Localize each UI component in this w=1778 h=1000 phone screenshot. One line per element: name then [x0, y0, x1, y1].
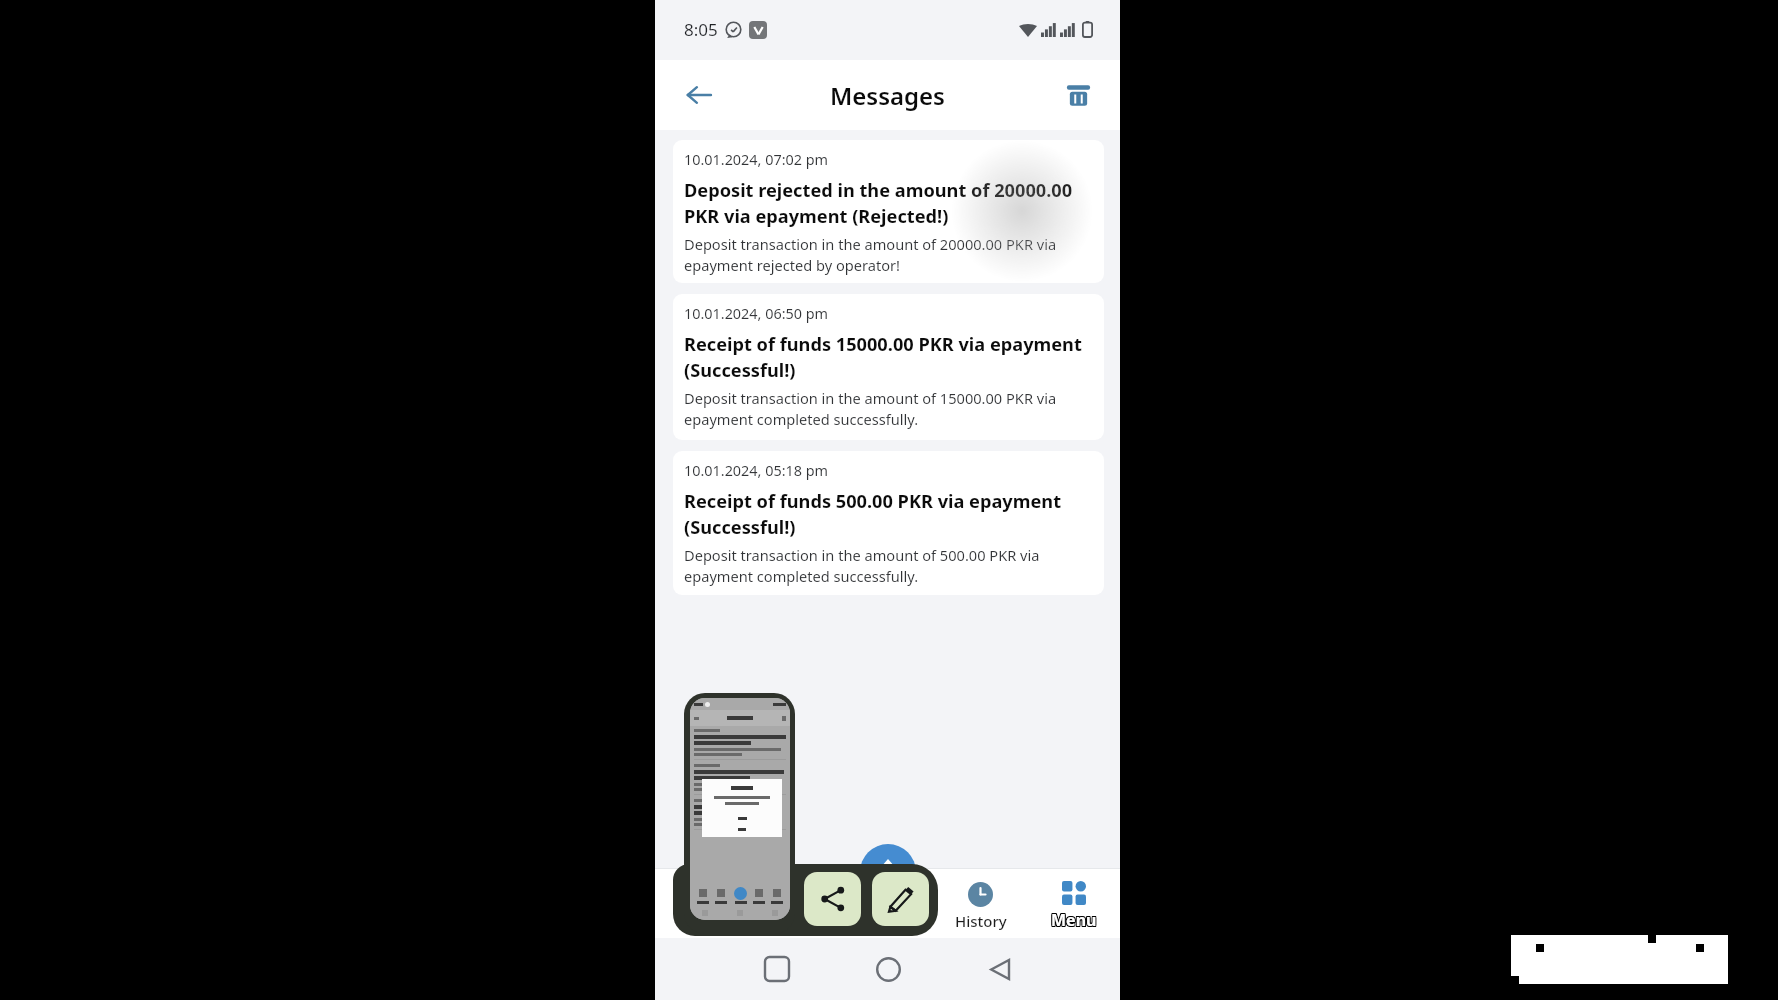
staticText: Menu [1051, 909, 1097, 931]
button[interactable]: Back [983, 952, 1017, 986]
button[interactable]: Menu [1027, 868, 1120, 938]
button[interactable]: Sports [655, 868, 748, 938]
staticText: Menu [1050, 909, 1096, 931]
staticText: Sports [678, 911, 725, 931]
staticText: Deposit transaction in the amount of 500… [684, 545, 1093, 587]
button[interactable]: Bets [841, 868, 934, 938]
button[interactable]: Delete [1056, 73, 1100, 117]
button[interactable]: 10.01.2024, 07:02 pm [673, 140, 1104, 283]
staticText: 10.01.2024, 06:50 pm [684, 304, 828, 324]
staticText: Receipt of funds 15000.00 PKR via epayme… [684, 332, 1093, 382]
button[interactable]: 10.01.2024, 06:50 pm [673, 294, 1104, 440]
staticText: Menu [1052, 908, 1098, 930]
button[interactable]: Share [804, 872, 861, 926]
staticText: Menu [1052, 910, 1098, 932]
staticText: Menu [1050, 908, 1096, 930]
staticText: Deposit rejected in the amount of 20000.… [684, 178, 1093, 228]
staticText: Messages [830, 79, 945, 112]
staticText: Menu [1051, 910, 1097, 932]
button[interactable]: Recents [760, 952, 794, 986]
staticText: 10.01.2024, 05:18 pm [684, 461, 828, 481]
button[interactable]: 10.01.2024, 05:18 pm [673, 451, 1104, 595]
staticText: Deposit transaction in the amount of 150… [684, 388, 1093, 430]
staticText: History [955, 911, 1007, 931]
button[interactable]: Edit [872, 872, 929, 926]
staticText: Menu [1050, 910, 1096, 932]
staticText: Menu [1051, 908, 1097, 930]
button[interactable]: New message [860, 844, 916, 900]
staticText: 8:05 [684, 18, 718, 41]
staticText: 10.01.2024, 07:02 pm [684, 150, 828, 170]
staticText: Deposit transaction in the amount of 200… [684, 234, 1093, 276]
button[interactable]: Home [871, 952, 905, 986]
button[interactable]: Screenshot preview [690, 698, 790, 920]
button[interactable]: Back [677, 73, 721, 117]
button[interactable]: Favorites [748, 868, 841, 938]
button[interactable]: History [934, 868, 1027, 938]
staticText: Menu [1052, 909, 1098, 931]
staticText: Receipt of funds 500.00 PKR via epayment… [684, 489, 1093, 539]
staticText: Favorites [762, 911, 828, 931]
